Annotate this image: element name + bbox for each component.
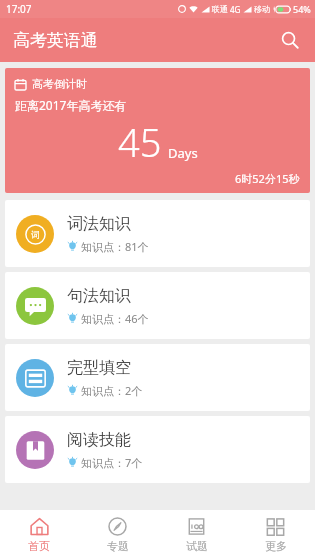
staticText: 54% (293, 3, 311, 15)
staticText: 4G (230, 4, 241, 15)
staticText: 知识点：2个 (81, 383, 143, 398)
staticText: 阅读技能 (67, 430, 131, 450)
staticText: 知识点：46个 (81, 311, 149, 326)
staticText: 词 (31, 229, 40, 240)
staticText: 45 (118, 116, 162, 168)
staticText: 联通 (212, 4, 228, 14)
button[interactable]: 词 (5, 200, 310, 267)
staticText: 移动 (254, 4, 270, 14)
staticText: 高考英语通 (13, 30, 98, 51)
staticText: 词法知识 (67, 214, 131, 234)
button[interactable]: 完型填空 (5, 344, 310, 411)
button[interactable]: 高考倒计时 (5, 68, 310, 193)
button[interactable]: 专题 (78, 510, 157, 560)
staticText: 17:07 (6, 2, 32, 16)
button[interactable]: 更多 (236, 510, 315, 560)
staticText: 句法知识 (67, 286, 131, 306)
staticText: 专题 (107, 539, 129, 553)
staticText: 试题 (186, 539, 208, 553)
staticText: 高考倒计时 (32, 77, 87, 91)
button[interactable]: 试题 (157, 510, 236, 560)
staticText: 首页 (28, 539, 50, 553)
button[interactable]: 首页 (0, 510, 78, 560)
staticText: 6时52分15秒 (235, 171, 300, 186)
button[interactable]: Search (273, 23, 307, 57)
staticText: 距离2017年高考还有 (15, 97, 127, 113)
staticText: 更多 (265, 539, 287, 553)
staticText: 完型填空 (67, 358, 131, 378)
button[interactable]: 阅读技能 (5, 416, 310, 483)
staticText: Days (168, 144, 198, 162)
staticText: 知识点：81个 (81, 239, 149, 254)
button[interactable]: 句法知识 (5, 272, 310, 339)
staticText: 知识点：7个 (81, 455, 143, 470)
